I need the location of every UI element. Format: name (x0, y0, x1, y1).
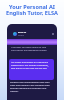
staticText: Online (18, 34, 24, 37)
staticText: Your Personal AI English Tutor, ELSA (0, 3, 64, 16)
staticText: ELSA AI (18, 31, 27, 34)
staticText: I thought you were going to visit your f… (11, 46, 50, 52)
button[interactable]: ELSA AI (13, 31, 54, 37)
staticText: My upper intonation in a sentence shows … (11, 61, 51, 70)
staticText: Perfect! Your pronunciation was very cle… (10, 81, 54, 93)
button[interactable]: My upper intonation in a sentence shows … (9, 59, 54, 80)
